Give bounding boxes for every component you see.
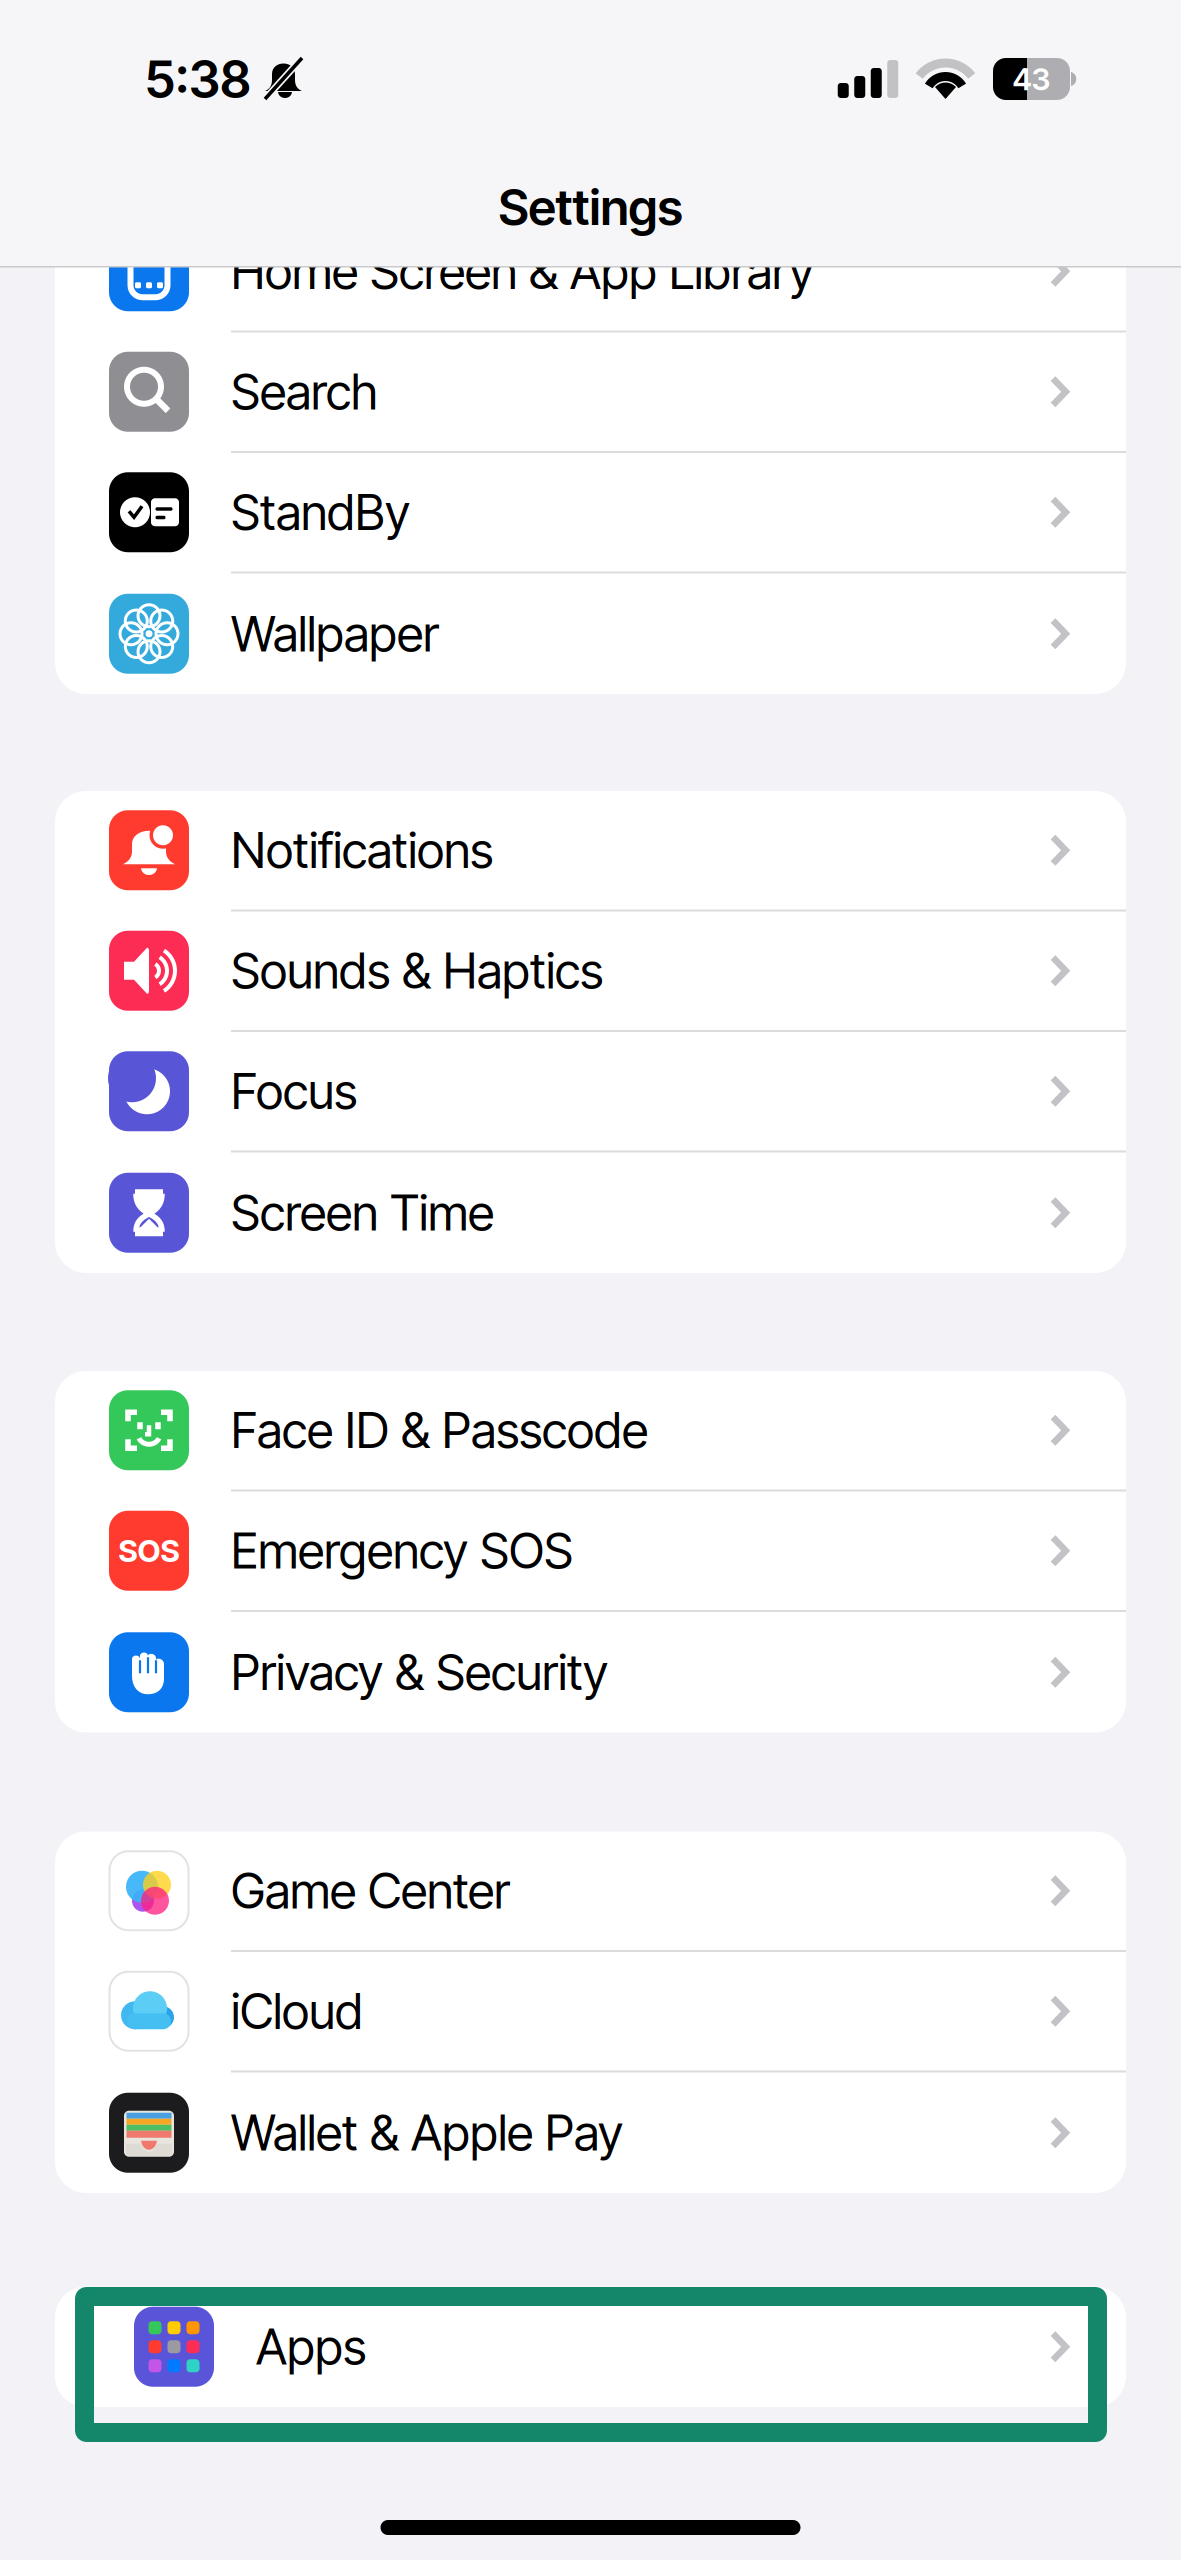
button[interactable]: Privacy & Security bbox=[55, 1612, 1126, 1732]
staticText: Home Screen & App Library bbox=[231, 242, 814, 301]
staticText: Settings bbox=[498, 177, 682, 237]
button[interactable]: Apps bbox=[55, 2286, 1126, 2407]
button[interactable]: SOS bbox=[55, 1491, 1126, 1612]
button[interactable]: iCloud bbox=[55, 1952, 1126, 2072]
button[interactable]: Search bbox=[55, 332, 1126, 453]
staticText: Wallpaper bbox=[231, 604, 439, 663]
staticText: Game Center bbox=[231, 1861, 510, 1920]
staticText: Sounds & Haptics bbox=[231, 941, 603, 1000]
button[interactable]: Sounds & Haptics bbox=[55, 911, 1126, 1032]
staticText: Screen Time bbox=[231, 1183, 494, 1242]
button[interactable]: Wallet & Apple Pay bbox=[55, 2072, 1126, 2193]
staticText: SOS bbox=[118, 1532, 179, 1569]
staticText: Wallet & Apple Pay bbox=[231, 2103, 623, 2162]
staticText: 43 bbox=[1012, 60, 1050, 97]
button[interactable]: Game Center bbox=[55, 1831, 1126, 1952]
staticText: Face ID & Passcode bbox=[231, 1401, 648, 1460]
staticText: Focus bbox=[231, 1062, 357, 1121]
staticText: iCloud bbox=[231, 1982, 363, 2041]
staticText: Notifications bbox=[231, 821, 493, 880]
staticText: Apps bbox=[256, 2317, 366, 2376]
button[interactable]: Home Screen & App Library bbox=[55, 212, 1126, 332]
button[interactable]: Notifications bbox=[55, 791, 1126, 911]
button[interactable]: Focus bbox=[55, 1032, 1126, 1152]
staticText: 5:38 bbox=[145, 48, 251, 110]
button[interactable]: Screen Time bbox=[55, 1152, 1126, 1273]
staticText: Privacy & Security bbox=[231, 1643, 608, 1702]
staticText: Search bbox=[231, 362, 378, 421]
button[interactable]: Wallpaper bbox=[55, 573, 1126, 694]
button[interactable]: Face ID & Passcode bbox=[55, 1371, 1126, 1491]
button[interactable]: StandBy bbox=[55, 453, 1126, 573]
staticText: Emergency SOS bbox=[231, 1521, 573, 1580]
staticText: StandBy bbox=[231, 483, 410, 542]
